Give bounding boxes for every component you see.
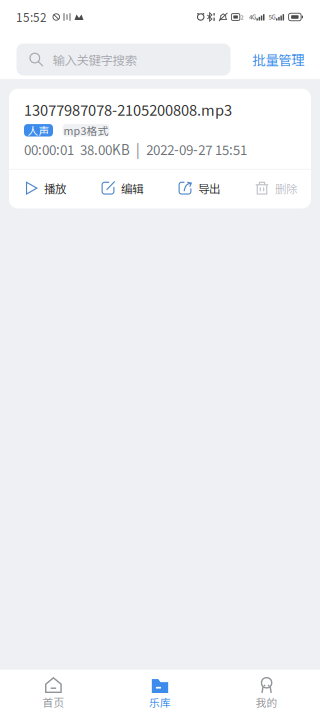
button[interactable]: 导出: [178, 175, 220, 201]
button[interactable]: 删除: [255, 175, 297, 201]
staticText: 15:52: [16, 8, 47, 25]
staticText: 13077987078-2105200808.mp3: [24, 99, 232, 120]
staticText: 删除: [275, 180, 297, 196]
button[interactable]: 首页: [0, 669, 107, 713]
button[interactable]: 输入关键字搜索: [16, 43, 230, 75]
staticText: 00:00:01 38.00KB | 2022-09-27 15:51: [24, 139, 247, 159]
staticText: 人声: [27, 123, 49, 138]
staticText: 导出: [198, 180, 220, 196]
button[interactable]: 乐库: [107, 669, 213, 713]
button[interactable]: 播放: [24, 175, 66, 201]
staticText: 我的: [256, 694, 278, 710]
button[interactable]: 批量管理: [252, 50, 304, 69]
button[interactable]: 编辑: [101, 175, 143, 201]
staticText: 首页: [42, 694, 64, 710]
staticText: 编辑: [121, 180, 143, 196]
staticText: 乐库: [149, 694, 171, 710]
button[interactable]: 我的: [213, 669, 320, 713]
staticText: 5G: [268, 12, 275, 21]
staticText: 播放: [44, 180, 66, 196]
staticText: 输入关键字搜索: [52, 50, 136, 68]
staticText: mp3格式: [63, 123, 108, 138]
staticText: 批量管理: [252, 50, 304, 69]
staticText: 2: [240, 13, 243, 21]
staticText: 4G: [249, 12, 256, 21]
